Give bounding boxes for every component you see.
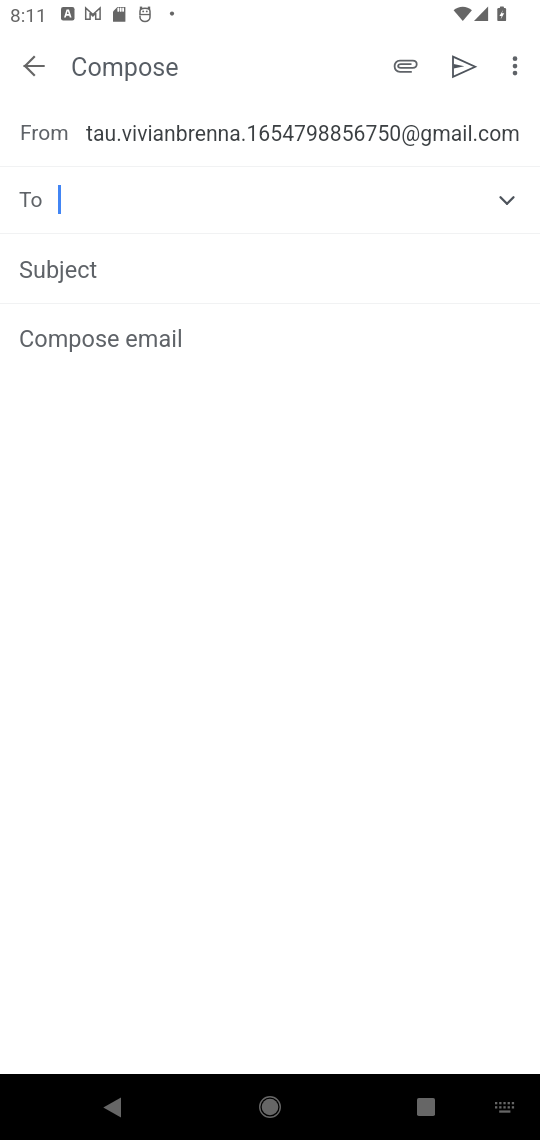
staticText: Subject (19, 256, 98, 284)
button[interactable]: Send (440, 43, 488, 91)
staticText: 8:11 (10, 4, 47, 26)
button[interactable]: Navigate up (10, 42, 58, 90)
button[interactable]: Compose email body (0, 304, 540, 1074)
button[interactable]: To field (0, 167, 540, 233)
button[interactable]: Recent apps (401, 1082, 451, 1132)
button[interactable]: Back (87, 1082, 137, 1132)
button[interactable]: From field (0, 100, 540, 166)
staticText: From (20, 121, 69, 146)
button[interactable]: Attach file (381, 36, 429, 84)
staticText: Compose email (19, 325, 183, 353)
button[interactable]: Show Cc and Bcc fields (483, 176, 531, 224)
staticText: tau.vivianbrenna.1654798856750@gmail.com (86, 121, 520, 146)
staticText: To (19, 188, 43, 213)
button[interactable]: Home (245, 1082, 295, 1132)
button[interactable]: More options (491, 42, 539, 90)
button[interactable]: Show keyboard (480, 1082, 530, 1132)
button[interactable]: Subject field (0, 234, 540, 303)
staticText: Compose (71, 53, 179, 83)
